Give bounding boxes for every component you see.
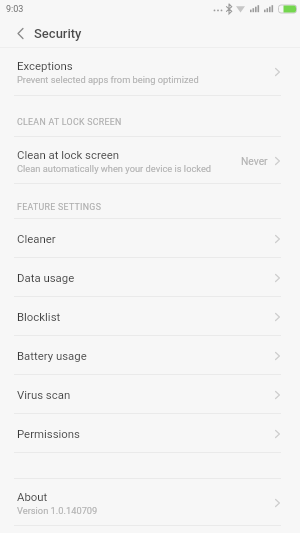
staticText: Exceptions [17, 59, 73, 72]
staticText: 9:03 [6, 4, 24, 15]
staticText: Cleaner [17, 232, 56, 245]
button[interactable]: Cleaner [0, 219, 300, 258]
button[interactable]: Exceptions [0, 48, 300, 96]
button[interactable]: Battery usage [0, 336, 300, 375]
staticText: Clean automatically when your device is … [17, 163, 212, 174]
staticText: Data usage [17, 271, 75, 284]
button[interactable]: Clean at lock screen [0, 137, 300, 184]
staticText: Prevent selected apps from being optimiz… [17, 74, 199, 85]
button[interactable]: Blocklist [0, 297, 300, 336]
staticText: Version 1.0.140709 [17, 505, 98, 516]
staticText: About [17, 490, 48, 503]
staticText: Permissions [17, 427, 80, 440]
staticText: Never [241, 155, 268, 167]
button[interactable] [10, 23, 30, 43]
button[interactable]: About [0, 479, 300, 526]
staticText: CLEAN AT LOCK SCREEN [17, 117, 122, 127]
staticText: FEATURE SETTINGS [17, 202, 102, 212]
button[interactable]: Permissions [0, 414, 300, 453]
staticText: Blocklist [17, 310, 61, 323]
staticText: Battery usage [17, 349, 87, 362]
button[interactable]: Data usage [0, 258, 300, 297]
button[interactable]: Virus scan [0, 375, 300, 414]
staticText: Clean at lock screen [17, 148, 120, 161]
staticText: Security [34, 26, 82, 41]
staticText: Virus scan [17, 388, 71, 401]
